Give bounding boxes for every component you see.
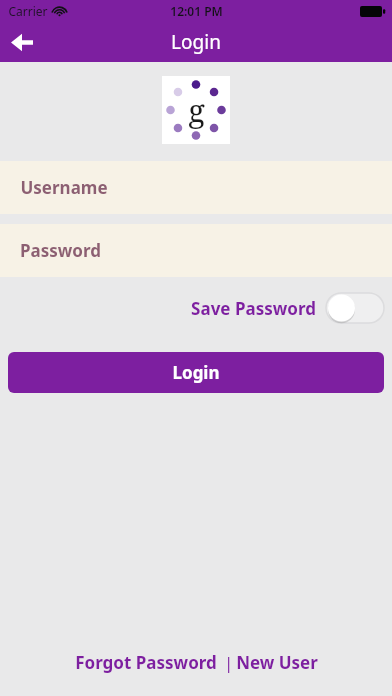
staticText: g [188,89,205,131]
button[interactable]: Username [0,161,392,214]
button[interactable]: Password [0,224,392,277]
button[interactable]: Forgot Password [75,647,217,678]
button[interactable]: Back [0,22,44,62]
staticText: Username [20,176,108,199]
other: Save Password toggle [326,293,384,323]
button[interactable]: Login [8,352,384,393]
button[interactable]: New User [236,647,318,678]
staticText: Forgot Password [75,651,217,674]
staticText: New User [236,651,318,674]
staticText: Login [171,29,221,55]
button[interactable]: Save Password [191,293,384,323]
staticText: Carrier [8,3,48,19]
staticText: Password [20,239,101,262]
staticText: Save Password [191,297,316,320]
staticText: 12:01 PM [170,3,223,19]
staticText: Login [172,361,220,384]
staticText: | [217,651,236,674]
